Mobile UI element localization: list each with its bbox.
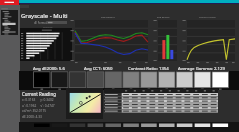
staticText: Average Gamma: 2.129	[178, 65, 225, 71]
staticText: u': 0.1962 v': 0.4747	[22, 104, 55, 108]
staticText: Grayscale	[43, 26, 53, 29]
staticText: dE 2000: 4.33	[22, 115, 42, 119]
staticText: RGB Balance	[157, 16, 170, 19]
staticText: Grayscale - Multi	[21, 12, 68, 20]
staticText: Avg CCT: 6050	[84, 65, 113, 71]
staticText: Contrast Ratio: 1354	[128, 65, 169, 71]
staticText: x: 0.3163 y: 0.3402	[22, 98, 54, 102]
staticText: Gamma Tracking	[199, 16, 216, 19]
staticText: Current Reading	[22, 91, 56, 97]
staticText: cd/m²: 352.0175	[22, 109, 47, 113]
staticText: dE Formula:	[34, 21, 49, 25]
staticText: Avg dE2000: 5.6	[33, 65, 65, 71]
staticText: RGB Balance	[101, 16, 115, 19]
